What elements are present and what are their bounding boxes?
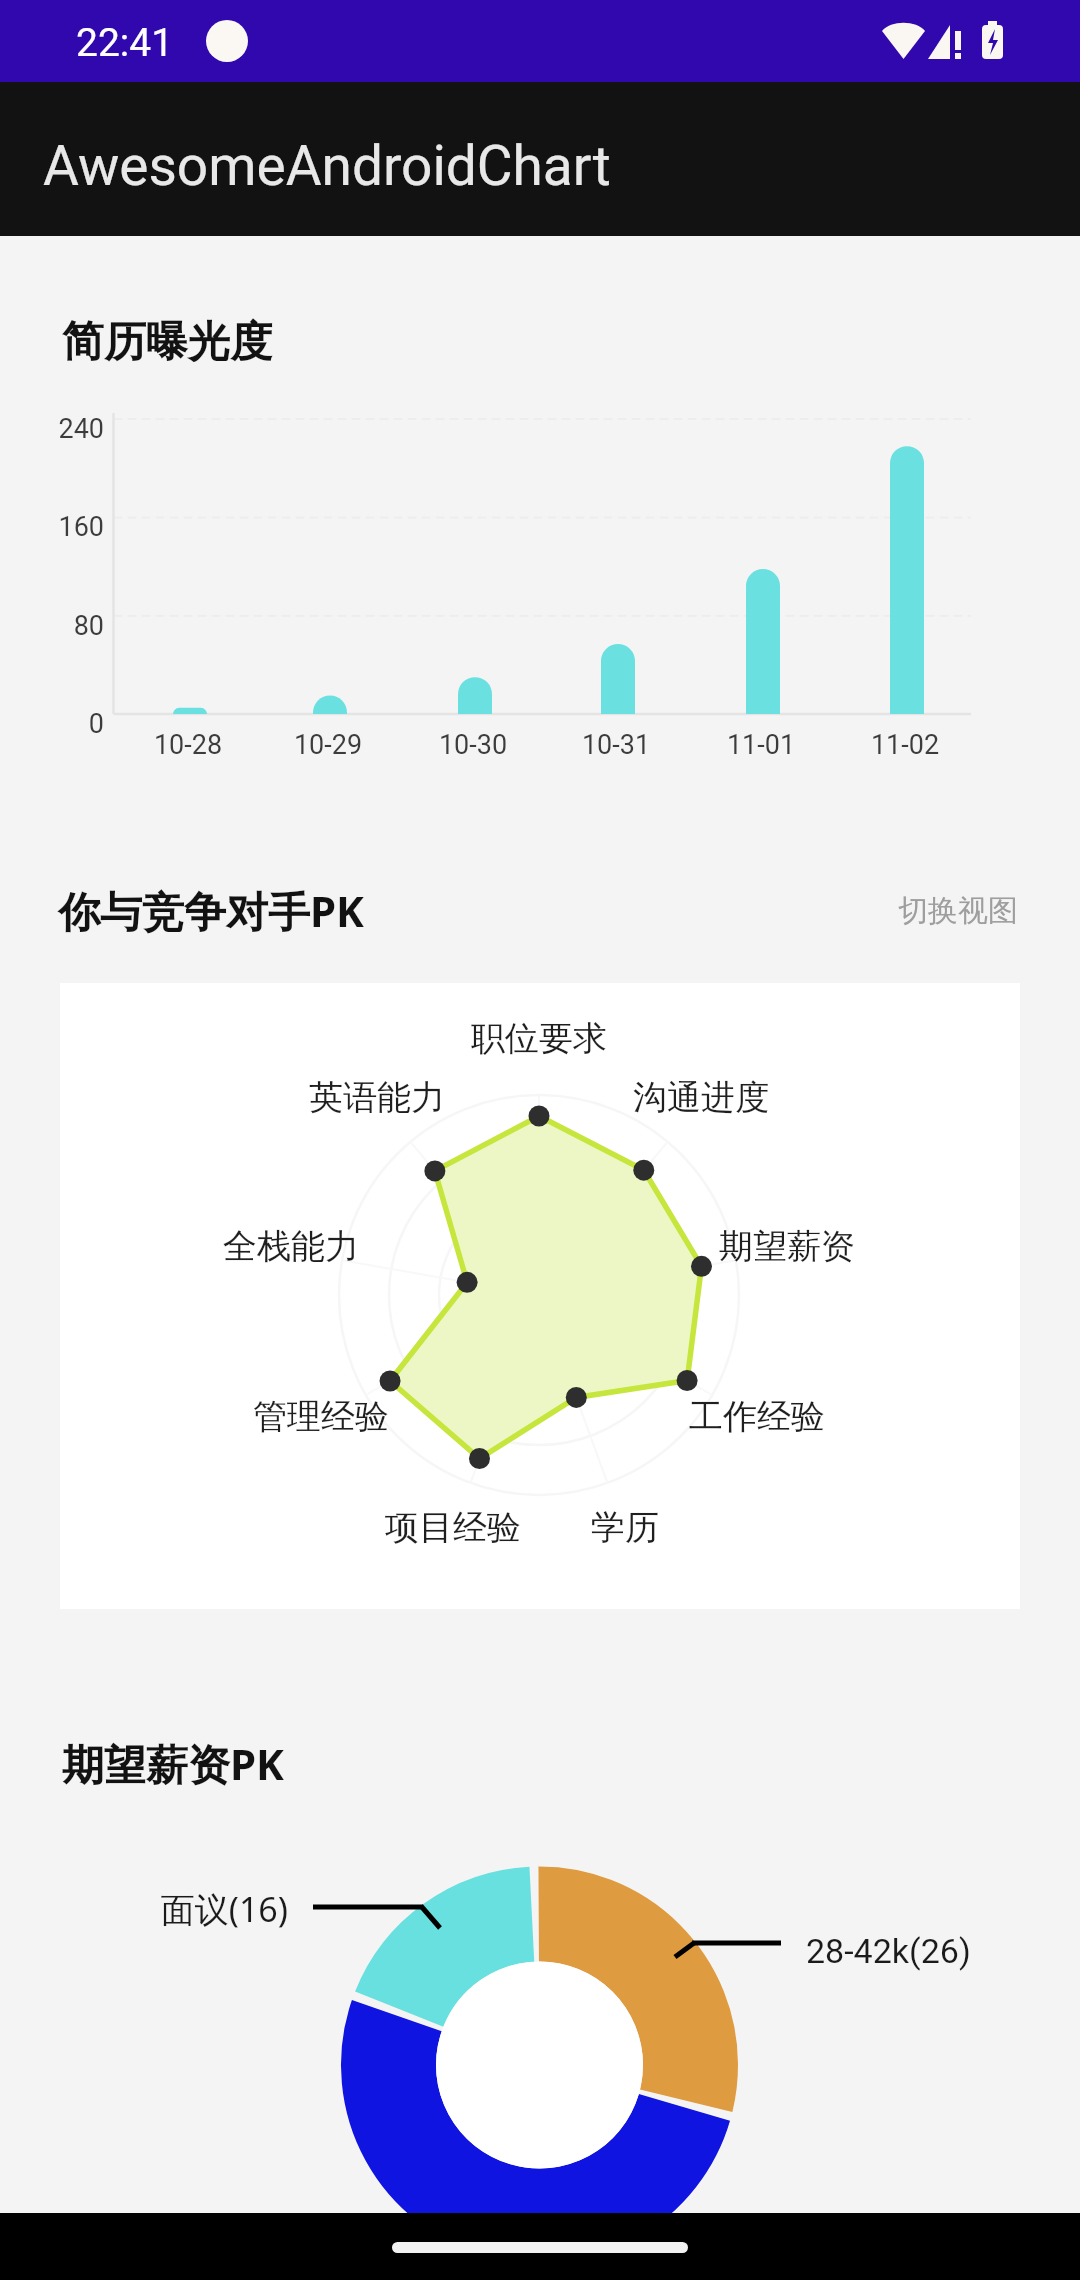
staticText: 28-42k(26) (806, 1931, 971, 1971)
staticText: 项目经验 (323, 1506, 583, 1549)
staticText: 期望薪资PK (62, 1735, 284, 1792)
staticText: 面议(16) (60, 1886, 288, 1932)
staticText: 0 (0, 708, 104, 740)
staticText: 简历曝光度 (62, 316, 272, 369)
staticText: 职位要求 (409, 1017, 669, 1060)
button[interactable] (60, 983, 1020, 1609)
staticText: 你与竞争对手PK (58, 882, 364, 939)
staticText: 11-02 (825, 729, 985, 761)
staticText: 80 (0, 610, 104, 642)
button[interactable]: Home (392, 2242, 688, 2253)
staticText: 10-29 (248, 729, 408, 761)
staticText: 22:41 (76, 20, 174, 66)
staticText: 学历 (495, 1506, 755, 1549)
staticText: 240 (0, 413, 104, 445)
staticText: 10-28 (108, 729, 268, 761)
staticText: 全栈能力 (161, 1225, 421, 1268)
staticText: 10-31 (536, 729, 696, 761)
staticText: 期望薪资 (657, 1225, 917, 1268)
button[interactable]: AwesomeAndroidChart (0, 82, 1080, 236)
staticText: 英语能力 (247, 1076, 507, 1119)
staticText: 切换视图 (890, 892, 1018, 930)
staticText: 沟通进度 (571, 1076, 831, 1119)
staticText: AwesomeAndroidChart (43, 134, 611, 198)
staticText: 工作经验 (627, 1395, 887, 1438)
staticText: 11-01 (681, 729, 841, 761)
button[interactable]: 切换视图 (890, 892, 1018, 930)
staticText: 10-30 (393, 729, 553, 761)
staticText: 管理经验 (191, 1395, 451, 1438)
staticText: 160 (0, 511, 104, 543)
